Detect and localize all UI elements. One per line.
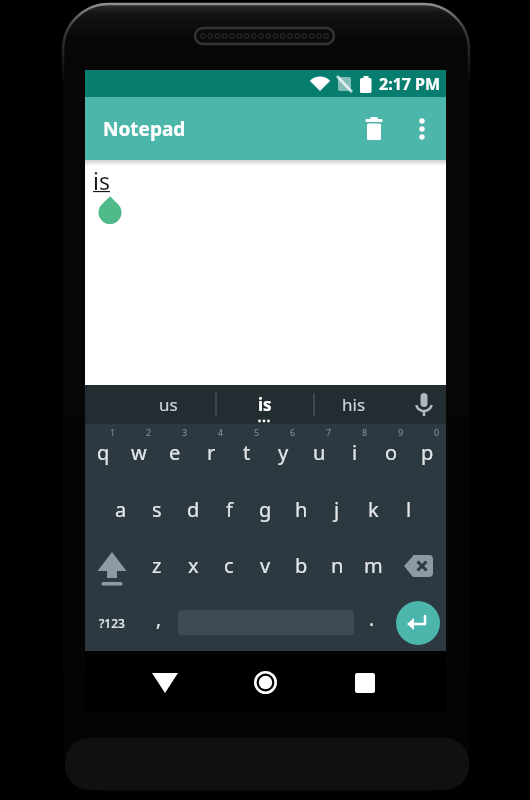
staticText: 1 bbox=[110, 426, 116, 438]
button[interactable] bbox=[140, 660, 190, 705]
button[interactable]: v bbox=[247, 537, 283, 594]
button[interactable] bbox=[390, 594, 446, 651]
staticText: 5 bbox=[254, 426, 260, 438]
staticText: g bbox=[259, 496, 272, 523]
staticText: w bbox=[131, 439, 147, 466]
staticText: , bbox=[156, 606, 162, 632]
button[interactable] bbox=[340, 660, 390, 705]
button[interactable]: f bbox=[211, 481, 247, 537]
staticText: is bbox=[258, 393, 272, 416]
staticText: i bbox=[352, 439, 358, 466]
button[interactable]: , bbox=[139, 594, 178, 651]
staticText: k bbox=[368, 496, 379, 523]
button[interactable]: u bbox=[301, 424, 337, 481]
staticText: n bbox=[331, 552, 344, 579]
button[interactable]: l bbox=[391, 481, 427, 537]
staticText: b bbox=[295, 552, 308, 579]
button[interactable]: us bbox=[120, 385, 216, 424]
button[interactable]: h bbox=[283, 481, 319, 537]
staticText: is bbox=[93, 165, 110, 196]
button[interactable]: q bbox=[85, 424, 121, 481]
staticText: l bbox=[406, 496, 412, 523]
button[interactable]: x bbox=[175, 537, 211, 594]
staticText: s bbox=[152, 496, 162, 523]
staticText: m bbox=[364, 552, 383, 579]
button[interactable]: j bbox=[319, 481, 355, 537]
staticText: 4 bbox=[218, 426, 224, 438]
button[interactable]: his bbox=[314, 385, 394, 424]
button[interactable]: c bbox=[211, 537, 247, 594]
staticText: y bbox=[278, 439, 289, 466]
staticText: 7 bbox=[326, 426, 332, 438]
staticText: 0 bbox=[434, 426, 440, 438]
staticText: j bbox=[334, 496, 340, 523]
staticText: ?123 bbox=[99, 615, 125, 631]
staticText: h bbox=[295, 496, 308, 523]
button[interactable]: ?123 bbox=[85, 594, 139, 651]
button[interactable] bbox=[178, 594, 354, 651]
button[interactable]: r bbox=[193, 424, 229, 481]
button[interactable]: a bbox=[103, 481, 139, 537]
staticText: r bbox=[207, 439, 216, 466]
staticText: . bbox=[369, 606, 375, 632]
staticText: u bbox=[313, 439, 326, 466]
staticText: 6 bbox=[290, 426, 296, 438]
button[interactable] bbox=[85, 537, 139, 594]
button[interactable]: n bbox=[319, 537, 355, 594]
staticText: q bbox=[97, 439, 110, 466]
button[interactable]: t bbox=[229, 424, 265, 481]
staticText: us bbox=[159, 393, 178, 416]
button[interactable]: w bbox=[121, 424, 157, 481]
button[interactable]: y bbox=[265, 424, 301, 481]
staticText: 9 bbox=[398, 426, 404, 438]
staticText: t bbox=[243, 439, 251, 466]
staticText: f bbox=[226, 496, 233, 523]
staticText: 8 bbox=[362, 426, 368, 438]
staticText: x bbox=[188, 552, 199, 579]
button[interactable] bbox=[404, 97, 440, 160]
staticText: z bbox=[152, 552, 162, 579]
staticText: Notepad bbox=[103, 116, 186, 142]
staticText: his bbox=[342, 393, 366, 416]
button[interactable]: s bbox=[139, 481, 175, 537]
button[interactable]: . bbox=[354, 594, 390, 651]
staticText: d bbox=[187, 496, 200, 523]
button[interactable] bbox=[391, 537, 446, 594]
staticText: c bbox=[224, 552, 234, 579]
button[interactable]: g bbox=[247, 481, 283, 537]
button[interactable]: o bbox=[373, 424, 409, 481]
staticText: 3 bbox=[182, 426, 188, 438]
staticText: o bbox=[385, 439, 398, 466]
button[interactable]: b bbox=[283, 537, 319, 594]
button[interactable] bbox=[354, 97, 394, 160]
button[interactable] bbox=[402, 385, 446, 424]
staticText: 2 bbox=[146, 426, 152, 438]
button[interactable]: z bbox=[139, 537, 175, 594]
button[interactable]: is bbox=[216, 385, 314, 424]
staticText: e bbox=[169, 439, 181, 466]
button[interactable]: p bbox=[409, 424, 445, 481]
staticText: v bbox=[260, 552, 271, 579]
button[interactable]: k bbox=[355, 481, 391, 537]
staticText: a bbox=[115, 496, 127, 523]
staticText: 2:17 PM bbox=[379, 73, 441, 95]
button[interactable]: e bbox=[157, 424, 193, 481]
button[interactable]: d bbox=[175, 481, 211, 537]
button[interactable]: m bbox=[355, 537, 391, 594]
button[interactable]: i bbox=[337, 424, 373, 481]
button[interactable] bbox=[240, 660, 290, 705]
staticText: p bbox=[421, 439, 434, 466]
